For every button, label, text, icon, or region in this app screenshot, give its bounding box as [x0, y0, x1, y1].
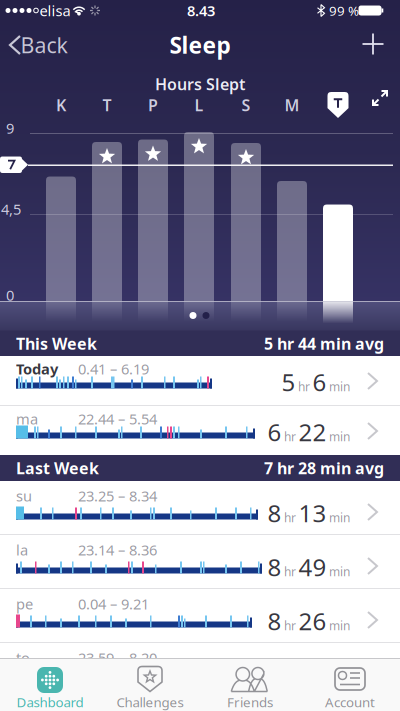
staticText: pe	[16, 594, 33, 613]
staticText: 5 hr 44 min avg	[264, 333, 384, 354]
staticText: hr	[284, 618, 296, 634]
staticText: T	[102, 94, 111, 116]
staticText: 0	[6, 285, 14, 305]
staticText: Dashboard	[16, 693, 83, 711]
staticText: Today	[16, 359, 58, 378]
staticText: Last Week	[16, 457, 99, 479]
staticText: This Week	[16, 333, 97, 354]
staticText: L	[194, 94, 203, 116]
staticText: 8	[267, 605, 281, 637]
staticText: 6	[267, 416, 281, 448]
staticText: 0.04 – 9.21	[78, 594, 149, 613]
staticText: 5	[281, 366, 295, 398]
staticText: 0.41 – 6.19	[78, 359, 149, 378]
staticText: 99 %	[329, 2, 359, 19]
staticText: 8	[267, 497, 281, 529]
staticText: la	[16, 540, 28, 559]
staticText: 22.44 – 5.54	[78, 409, 157, 428]
staticText: 9	[6, 118, 14, 138]
staticText: Friends	[227, 693, 273, 711]
staticText: hr	[284, 429, 296, 445]
staticText: min	[329, 564, 350, 580]
staticText: 8.43	[187, 1, 215, 20]
staticText: M	[284, 94, 299, 116]
staticText: P	[148, 94, 158, 116]
staticText: elisa	[39, 1, 70, 20]
staticText: 13	[298, 497, 326, 529]
staticText: ma	[16, 409, 38, 428]
staticText: 26	[298, 605, 326, 637]
staticText: Hours Slept	[155, 73, 245, 95]
staticText: min	[329, 618, 350, 634]
staticText: to	[16, 648, 30, 667]
staticText: hr	[298, 379, 310, 395]
staticText: 49	[298, 551, 326, 583]
staticText: Account	[325, 693, 375, 711]
staticText: su	[16, 486, 32, 505]
staticText: 8	[267, 551, 281, 583]
staticText: 23.25 – 8.34	[78, 486, 157, 505]
staticText: min	[329, 379, 350, 395]
staticText: 7 hr 28 min avg	[264, 457, 384, 479]
staticText: 22	[298, 416, 326, 448]
staticText: hr	[284, 510, 296, 526]
staticText: 4,5	[1, 199, 21, 219]
staticText: min	[329, 510, 350, 526]
staticText: min	[329, 429, 350, 445]
staticText: Back	[20, 31, 67, 59]
staticText: 23.14 – 8.36	[78, 540, 157, 559]
staticText: 23.59 – 8.20	[78, 648, 157, 667]
staticText: Sleep	[169, 30, 230, 60]
staticText: S	[241, 94, 250, 116]
staticText: Challenges	[116, 693, 183, 711]
staticText: hr	[284, 564, 296, 580]
staticText: 6	[312, 366, 326, 398]
staticText: K	[56, 94, 66, 116]
